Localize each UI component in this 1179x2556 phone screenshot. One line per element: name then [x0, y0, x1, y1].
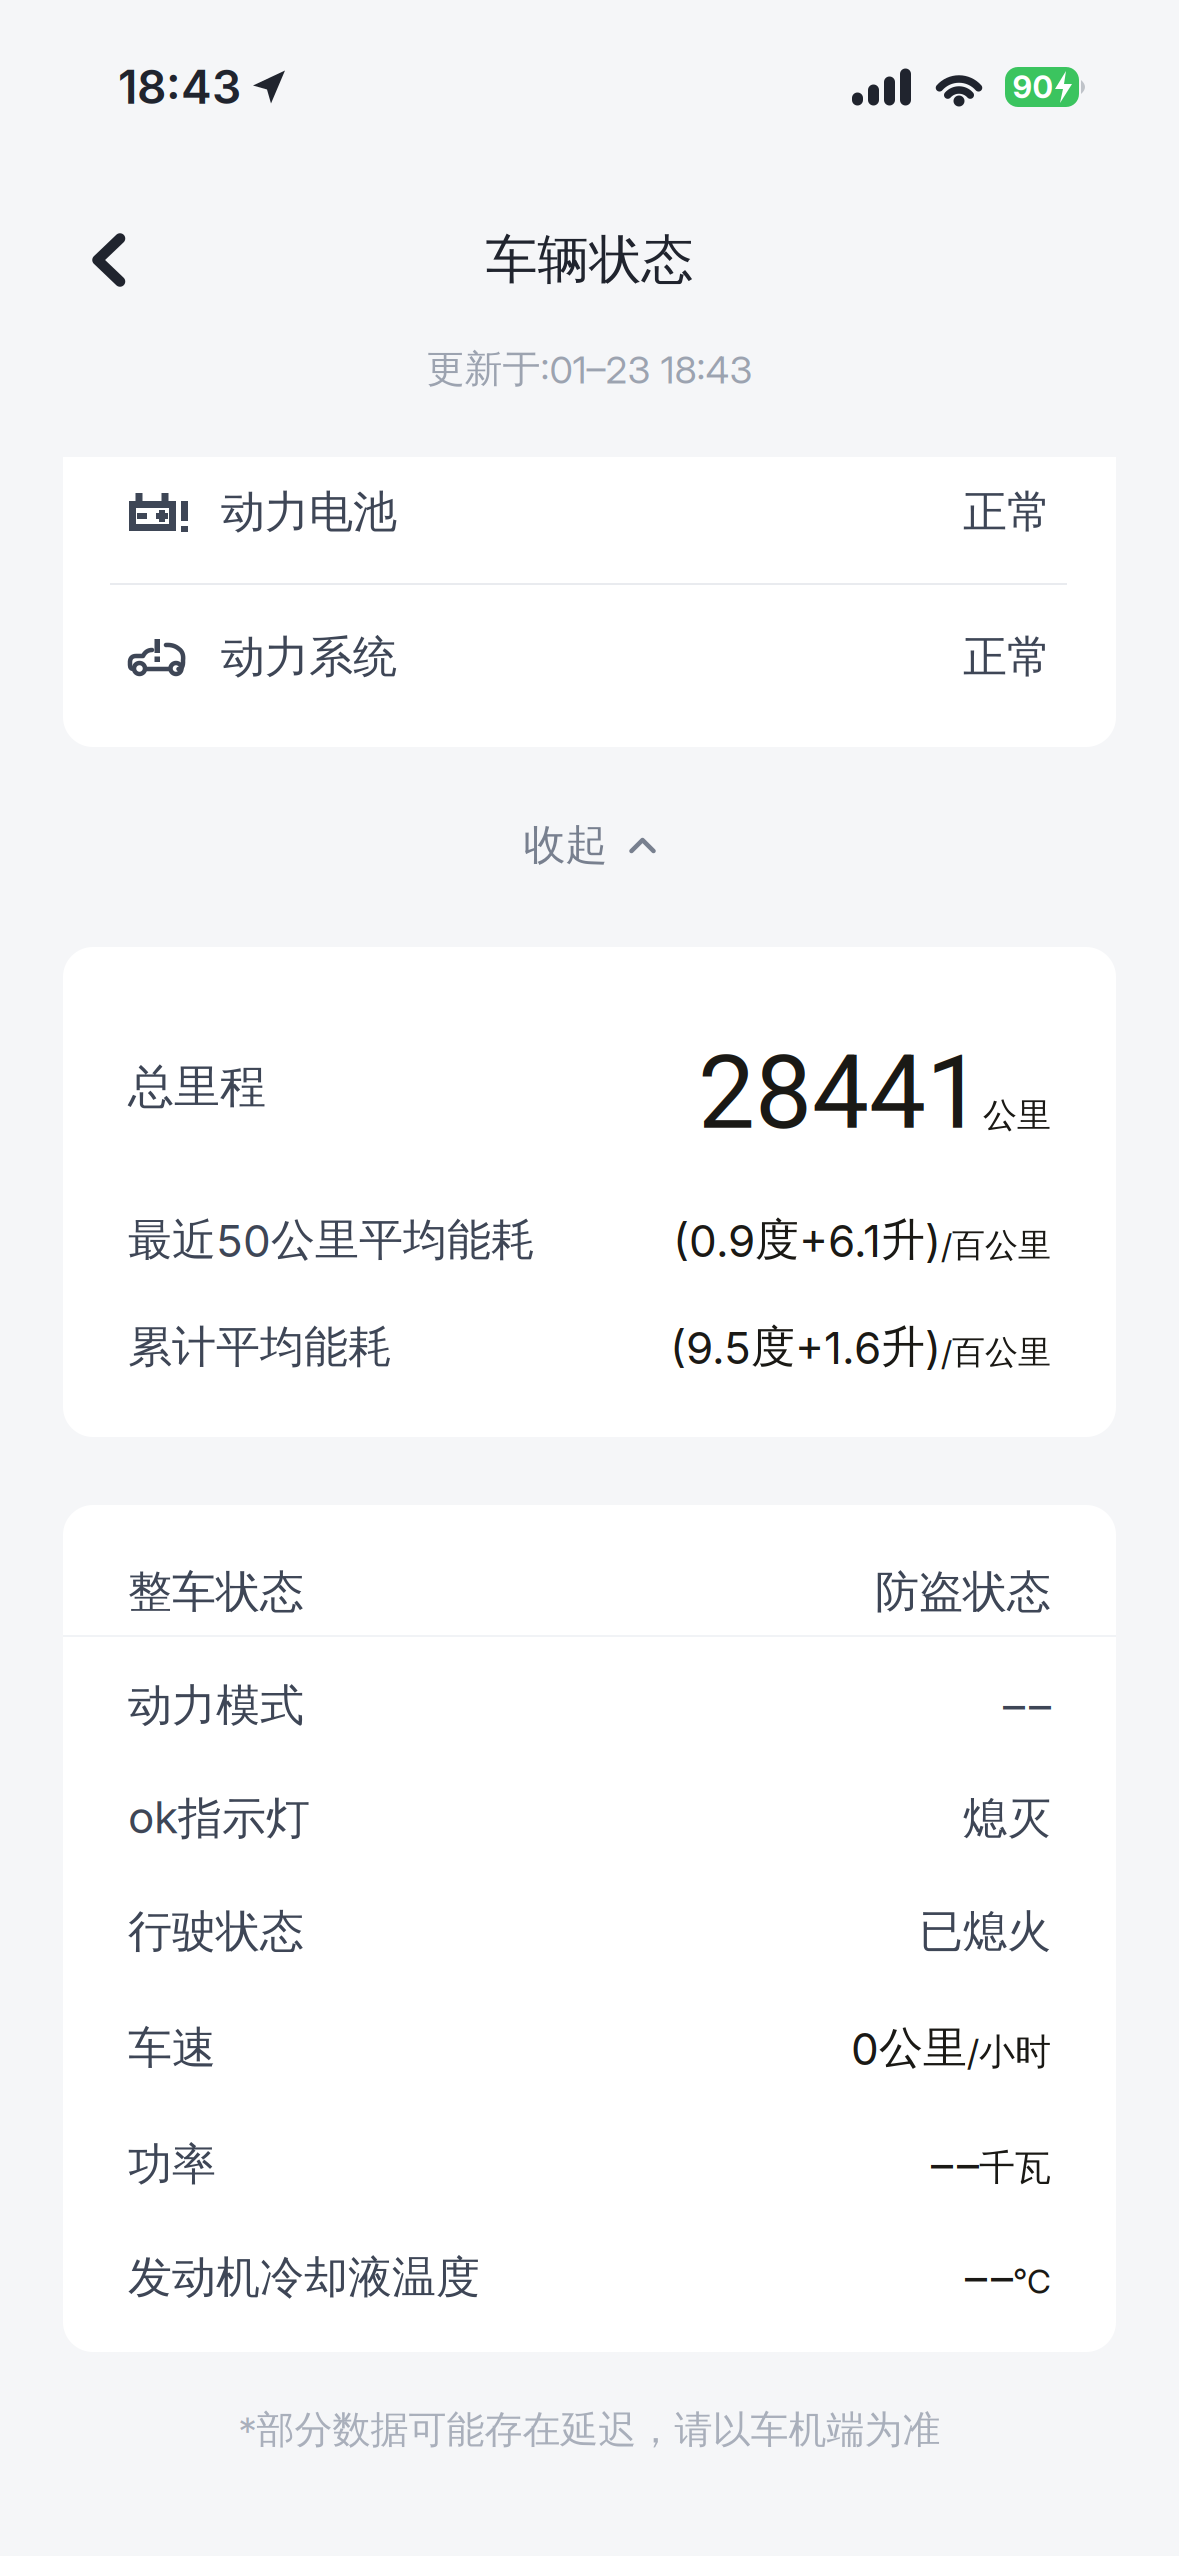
staticText: 更新于:01–23 18:43 — [426, 345, 752, 393]
staticText: 0公里/小时 — [851, 2021, 1051, 2075]
staticText: 最近50公里平均能耗 — [128, 1212, 535, 1268]
staticText: *部分数据可能存在延迟，请以车机端为准 — [238, 2406, 940, 2454]
staticText: (9.5度+1.6升)/百公里 — [670, 1320, 1051, 1374]
staticText: 熄灭 — [963, 1791, 1051, 1846]
staticText: 正常 — [963, 629, 1051, 685]
staticText: 18:43 — [118, 59, 241, 115]
staticText: 整车状态 — [128, 1564, 304, 1620]
staticText: 总里程 — [128, 1058, 266, 1116]
staticText: 行驶状态 — [128, 1904, 304, 1959]
staticText: 动力电池 — [221, 484, 397, 540]
staticText: 发动机冷却液温度 — [128, 2250, 480, 2305]
button[interactable]: 返回 — [0, 235, 165, 285]
staticText: 累计平均能耗 — [128, 1319, 392, 1375]
staticText: (0.9度+6.1升)/百公里 — [673, 1213, 1051, 1267]
staticText: – –千瓦 — [931, 2138, 1051, 2190]
staticText: 防盗状态 — [875, 1564, 1051, 1620]
staticText: 正常 — [963, 484, 1051, 540]
staticText: 90 — [1012, 68, 1053, 106]
staticText: – – — [1003, 1679, 1051, 1732]
staticText: 车速 — [128, 2020, 216, 2076]
staticText: 已熄火 — [919, 1904, 1051, 1959]
button[interactable]: 收起 — [523, 819, 655, 871]
staticText: 28441公里 — [698, 1035, 1051, 1151]
staticText: – –°C — [965, 2251, 1051, 2303]
staticText: 车辆状态 — [485, 227, 693, 293]
staticText: 动力模式 — [128, 1678, 304, 1733]
staticText: 功率 — [128, 2137, 216, 2192]
staticText: 收起 — [523, 818, 607, 871]
staticText: ok指示灯 — [128, 1791, 310, 1846]
staticText: 动力系统 — [221, 629, 397, 685]
